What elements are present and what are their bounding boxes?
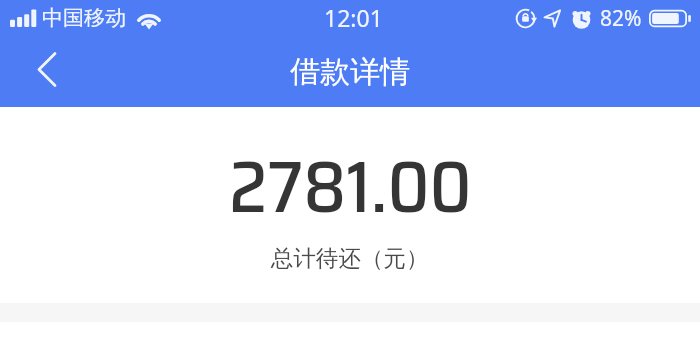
- staticText: 中国移动: [42, 5, 126, 31]
- staticText: 12:01: [324, 2, 383, 33]
- staticText: 82%: [600, 4, 642, 33]
- staticText: 借款详情: [290, 53, 410, 91]
- staticText: 总计待还（元）: [271, 244, 429, 272]
- staticText: 2781.00: [229, 129, 472, 244]
- button[interactable]: Back: [22, 46, 66, 98]
